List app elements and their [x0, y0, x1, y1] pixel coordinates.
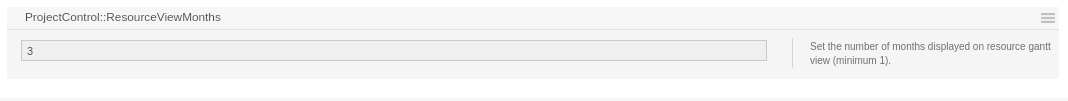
button[interactable]: Menu [1036, 8, 1060, 28]
button[interactable]: 3 [21, 40, 767, 61]
staticText: 3 [27, 45, 34, 57]
staticText: ProjectControl::ResourceViewMonths [25, 10, 221, 23]
staticText: Set the number of months displayed on re… [810, 41, 1055, 66]
button[interactable] [7, 7, 1059, 29]
